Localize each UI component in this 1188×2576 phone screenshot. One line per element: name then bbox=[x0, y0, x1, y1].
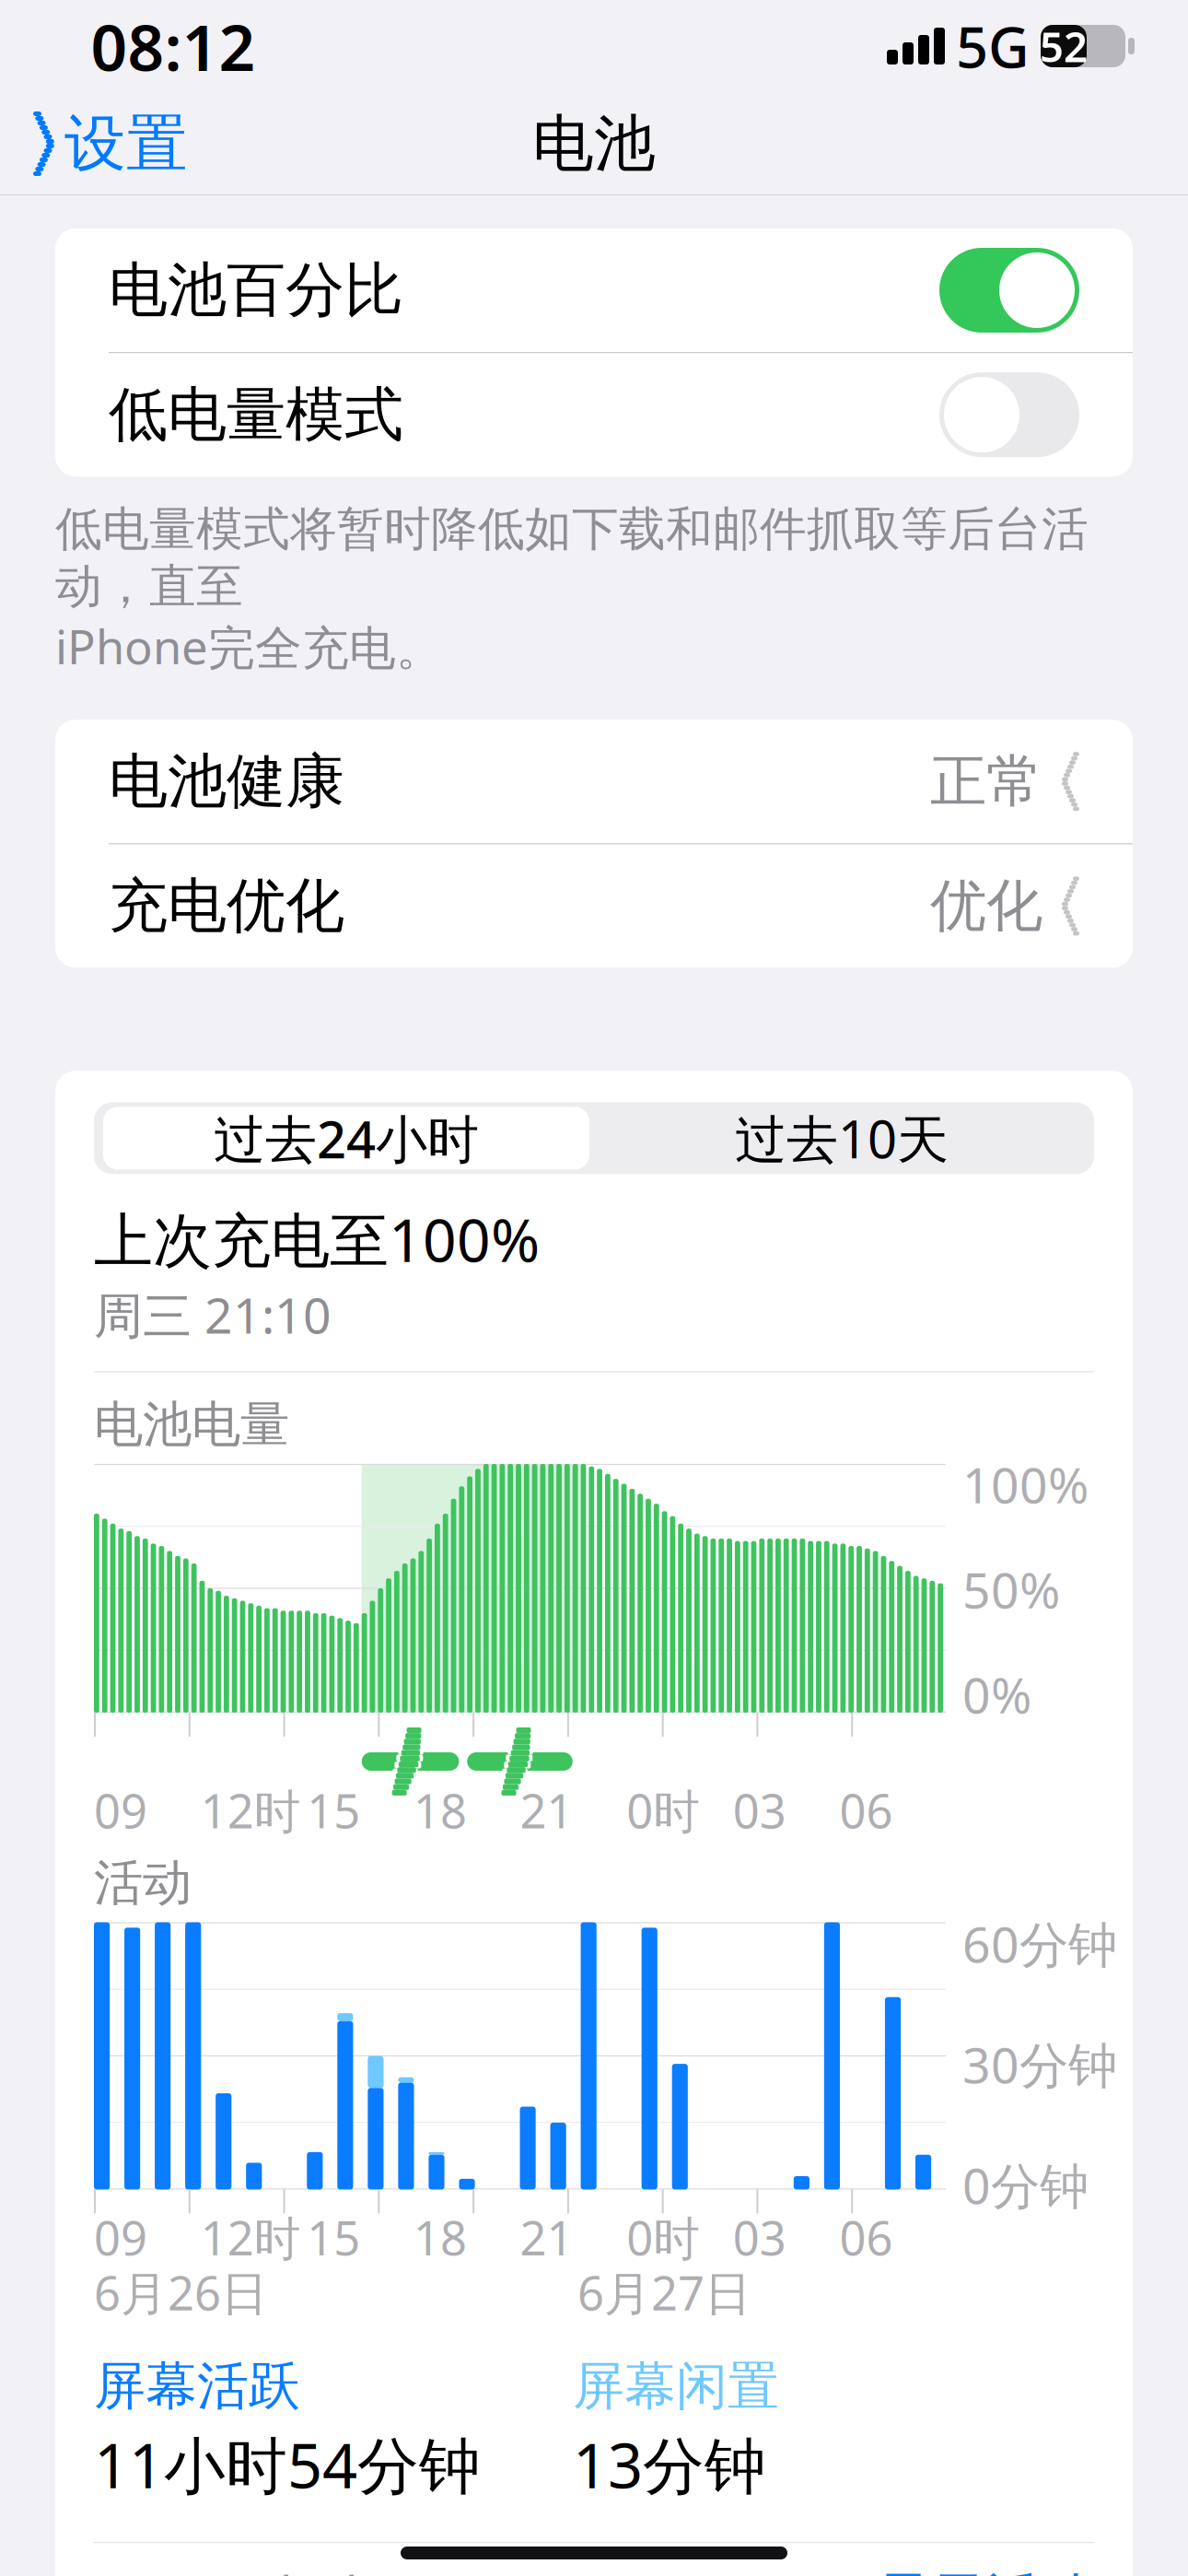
staticText: 09 bbox=[94, 2206, 147, 2268]
staticText: 03 bbox=[733, 1779, 786, 1841]
staticText: 18 bbox=[413, 2206, 467, 2268]
staticText: 电池百分比 bbox=[109, 254, 403, 326]
staticText: 0分钟 bbox=[962, 2152, 1089, 2217]
staticText: 08:12 bbox=[91, 4, 256, 89]
staticText: 09 bbox=[94, 1779, 147, 1841]
button[interactable]: 设置 bbox=[0, 93, 188, 194]
staticText: 周三 21:10 bbox=[94, 1282, 332, 1347]
staticText: 21 bbox=[520, 1779, 573, 1841]
staticText: App 的电池用量 bbox=[94, 2562, 480, 2576]
staticText: 0时 bbox=[626, 2206, 700, 2268]
staticText: 06 bbox=[839, 1779, 893, 1841]
staticText: 优化 bbox=[930, 871, 1042, 941]
staticText: 5G bbox=[956, 9, 1030, 84]
button[interactable]: 过去10天 bbox=[594, 1102, 1089, 1174]
button[interactable]: 电池健康 bbox=[55, 720, 1133, 843]
staticText: 屏幕闲置 bbox=[573, 2355, 779, 2418]
staticText: 6月26日 bbox=[94, 2261, 268, 2323]
staticText: 0时 bbox=[626, 1779, 700, 1841]
staticText: 过去10天 bbox=[735, 1104, 949, 1172]
staticText: 0% bbox=[962, 1662, 1031, 1727]
staticText: 上次充电至100% bbox=[94, 1200, 540, 1278]
staticText: 低电量模式 bbox=[109, 379, 403, 451]
button[interactable]: 电池百分比 bbox=[55, 228, 1133, 352]
staticText: 21 bbox=[520, 2206, 573, 2268]
staticText: 设置 bbox=[64, 106, 188, 181]
button[interactable]: 低电量模式 bbox=[55, 353, 1133, 477]
staticText: 03 bbox=[733, 2206, 786, 2268]
staticText: 100% bbox=[962, 1452, 1089, 1517]
staticText: 60分钟 bbox=[962, 1911, 1117, 1976]
staticText: 电池电量 bbox=[94, 1394, 289, 1455]
staticText: 充电优化 bbox=[109, 870, 344, 942]
staticText: 15 bbox=[307, 2206, 360, 2268]
button[interactable]: 充电优化 bbox=[55, 844, 1133, 968]
staticText: 过去24小时 bbox=[214, 1104, 479, 1172]
button[interactable]: 显示活动 bbox=[877, 2554, 1094, 2576]
staticText: 15 bbox=[307, 1779, 360, 1841]
staticText: 52 bbox=[1040, 18, 1088, 74]
staticText: 12时 bbox=[200, 1779, 301, 1841]
staticText: 正常 bbox=[930, 747, 1042, 816]
staticText: 06 bbox=[839, 2206, 893, 2268]
staticText: 电池 bbox=[532, 106, 656, 181]
staticText: 13分钟 bbox=[573, 2424, 766, 2505]
staticText: 18 bbox=[413, 1779, 467, 1841]
staticText: 30分钟 bbox=[962, 2032, 1117, 2097]
staticText: 低电量模式将暂时降低如下载和邮件抓取等后台活动，直至 iPhone完全充电。 bbox=[55, 500, 1089, 677]
staticText: 屏幕活跃 bbox=[94, 2355, 300, 2418]
staticText: 活动 bbox=[94, 1853, 192, 1913]
button[interactable]: 过去24小时 bbox=[99, 1102, 594, 1174]
staticText: 显示活动 bbox=[877, 2565, 1094, 2576]
staticText: 12时 bbox=[200, 2206, 301, 2268]
staticText: 电池健康 bbox=[109, 745, 344, 818]
staticText: 6月27日 bbox=[577, 2261, 751, 2323]
staticText: 11小时54分钟 bbox=[94, 2424, 481, 2505]
staticText: 50% bbox=[962, 1557, 1060, 1622]
